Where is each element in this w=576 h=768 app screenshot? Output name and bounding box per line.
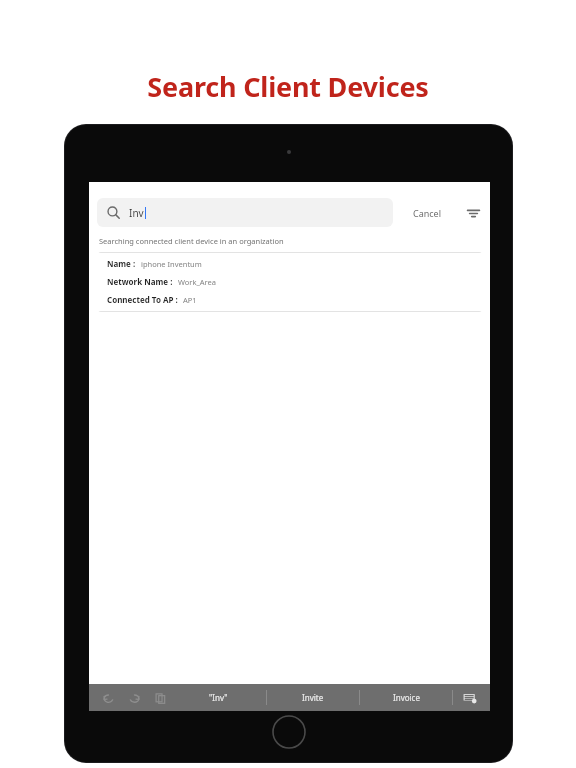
staticText: Work_Area <box>178 277 216 287</box>
staticText: iphone Inventum <box>141 259 202 269</box>
button[interactable]: Invoice <box>360 684 452 711</box>
staticText: Network Name : <box>107 276 173 287</box>
staticText: Name : <box>107 258 136 269</box>
staticText: AP1 <box>183 295 197 305</box>
button[interactable]: Paste <box>150 688 170 708</box>
staticText: Search Client Devices <box>0 68 576 105</box>
staticText: Cancel <box>413 207 442 219</box>
button[interactable]: Redo <box>124 688 144 708</box>
button[interactable]: Cancel <box>407 203 448 223</box>
button[interactable]: Invite <box>267 684 359 711</box>
staticText: Invite <box>302 692 324 703</box>
button[interactable]: Undo <box>98 688 118 708</box>
staticText: Invoice <box>393 692 420 703</box>
staticText: Searching connected client device in an … <box>99 236 284 246</box>
staticText: Inv <box>129 206 144 220</box>
button[interactable]: "Inv" <box>170 684 266 711</box>
staticText: "Inv" <box>209 692 228 703</box>
staticText: Connected To AP : <box>107 294 178 305</box>
button[interactable]: Name : <box>98 252 482 312</box>
button[interactable]: Inv <box>97 198 393 227</box>
button[interactable]: Filter <box>462 202 484 224</box>
button[interactable]: Hide keyboard <box>453 684 487 711</box>
